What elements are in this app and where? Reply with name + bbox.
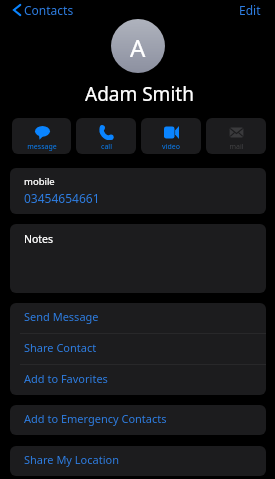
staticText: call — [101, 142, 112, 152]
button[interactable]: Add to Favorites — [10, 365, 266, 395]
button[interactable]: Contacts — [0, 0, 80, 19]
staticText: message — [27, 142, 57, 152]
staticText: A — [130, 31, 146, 64]
staticText: Contacts — [24, 2, 74, 17]
staticText: Notes — [24, 232, 54, 246]
staticText: 03454654661 — [24, 190, 100, 206]
button[interactable]: Send Message — [10, 303, 266, 333]
button[interactable]: Add to Emergency Contacts — [10, 405, 266, 435]
button[interactable]: Mail — [206, 118, 266, 154]
button[interactable]: Share My Location — [10, 446, 266, 476]
button[interactable]: Edit — [227, 0, 275, 19]
staticText: Share My Location — [24, 452, 119, 467]
staticText: Share Contact — [24, 340, 97, 355]
button[interactable]: Video call — [141, 118, 201, 154]
button[interactable]: Share Contact — [10, 334, 266, 364]
button[interactable]: Call — [76, 118, 136, 154]
staticText: mobile — [24, 175, 55, 188]
staticText: video — [162, 142, 180, 152]
staticText: Adam Smith — [85, 81, 194, 107]
staticText: Send Message — [24, 309, 99, 324]
staticText: mail — [229, 142, 244, 152]
staticText: Add to Favorites — [24, 371, 108, 386]
button[interactable]: Send message — [12, 118, 71, 154]
staticText: Add to Emergency Contacts — [24, 411, 167, 426]
staticText: Edit — [239, 2, 261, 17]
